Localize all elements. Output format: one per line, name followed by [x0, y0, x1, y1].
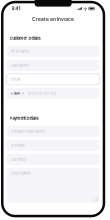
button[interactable]: Choose Hotel name — [6, 126, 100, 137]
staticText: Create an Invoice — [32, 16, 74, 22]
staticText: Payment Details — [9, 116, 38, 121]
staticText: 9:41 — [11, 6, 20, 11]
staticText: Customer Details — [9, 36, 40, 41]
staticText: Email — [10, 77, 20, 82]
staticText: (00) 00 00 00 — [28, 91, 57, 96]
staticText: Amount — [10, 143, 24, 148]
staticText: Currency — [10, 157, 26, 162]
staticText: Last name — [10, 63, 28, 68]
button[interactable]: Email — [6, 74, 100, 85]
staticText: Description — [10, 171, 30, 176]
button[interactable]: Amount — [6, 140, 100, 151]
button[interactable]: Last name — [6, 60, 100, 71]
staticText: Choose Hotel name — [10, 129, 44, 134]
button[interactable]: First name — [6, 46, 100, 57]
staticText: +994 — [10, 91, 20, 96]
staticText: First name — [10, 49, 29, 54]
button[interactable]: Currency — [6, 154, 100, 165]
button[interactable]: +994 — [6, 88, 100, 99]
